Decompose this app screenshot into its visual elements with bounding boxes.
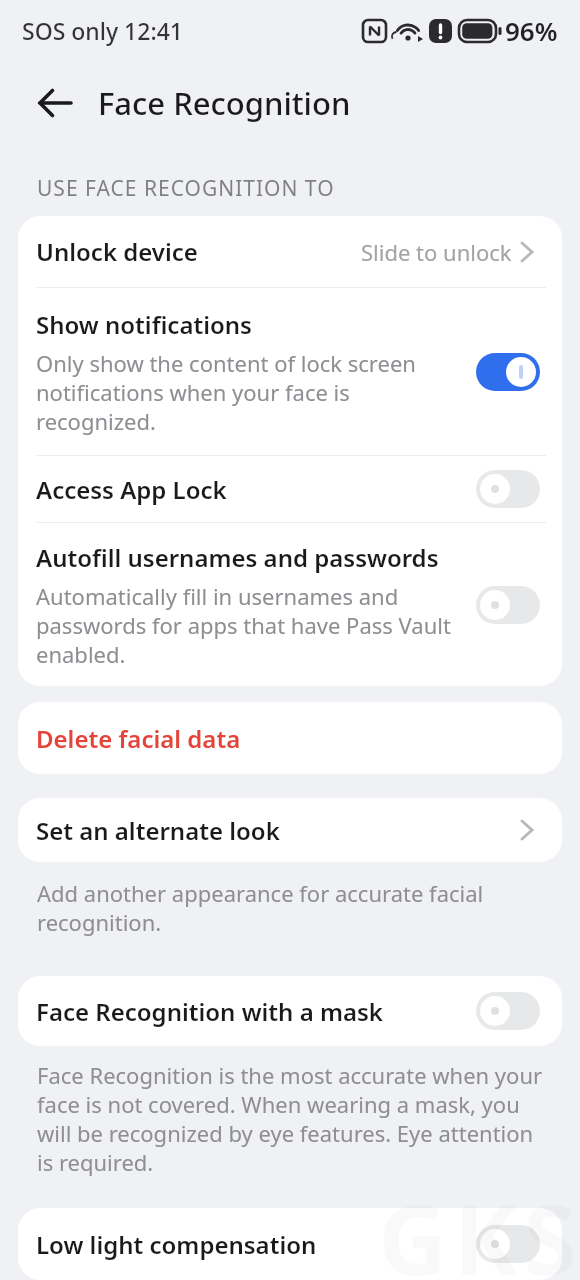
staticText: SOS only 12:41 (22, 15, 183, 46)
button[interactable] (476, 1225, 540, 1263)
staticText: Face Recognition with a mask (36, 995, 383, 1028)
staticText: Face Recognition is the most accurate wh… (37, 1060, 543, 1177)
staticText: Access App Lock (36, 473, 227, 506)
staticText: Automatically fill in usernames and pass… (36, 581, 451, 669)
staticText: Set an alternate look (36, 814, 280, 847)
button[interactable]: Show notifications (18, 288, 562, 455)
staticText: Slide to unlock (361, 237, 512, 267)
button[interactable] (476, 470, 540, 508)
button[interactable] (38, 88, 73, 118)
button[interactable]: Autofill usernames and passwords (18, 523, 562, 686)
staticText: USE FACE RECOGNITION TO (37, 174, 335, 203)
staticText: Low light compensation (36, 1228, 317, 1261)
staticText: GKS (378, 1172, 580, 1280)
staticText: Unlock device (36, 235, 198, 268)
staticText: Show notifications (36, 308, 252, 341)
staticText: Face Recognition (98, 82, 351, 124)
button[interactable]: Delete facial data (18, 702, 562, 774)
button[interactable]: Low light compensation (18, 1208, 562, 1280)
button[interactable]: Unlock device (18, 216, 562, 287)
staticText: Only show the content of lock screen not… (36, 348, 416, 436)
staticText: Autofill usernames and passwords (36, 541, 439, 574)
button[interactable]: Face Recognition with a mask (18, 976, 562, 1046)
staticText: Delete facial data (36, 722, 241, 755)
button[interactable] (476, 992, 540, 1030)
staticText: 96% (505, 13, 558, 48)
button[interactable] (476, 586, 540, 624)
button[interactable]: Set an alternate look (18, 798, 562, 862)
button[interactable]: Access App Lock (18, 456, 562, 522)
staticText: Add another appearance for accurate faci… (37, 878, 484, 937)
button[interactable] (476, 353, 540, 391)
